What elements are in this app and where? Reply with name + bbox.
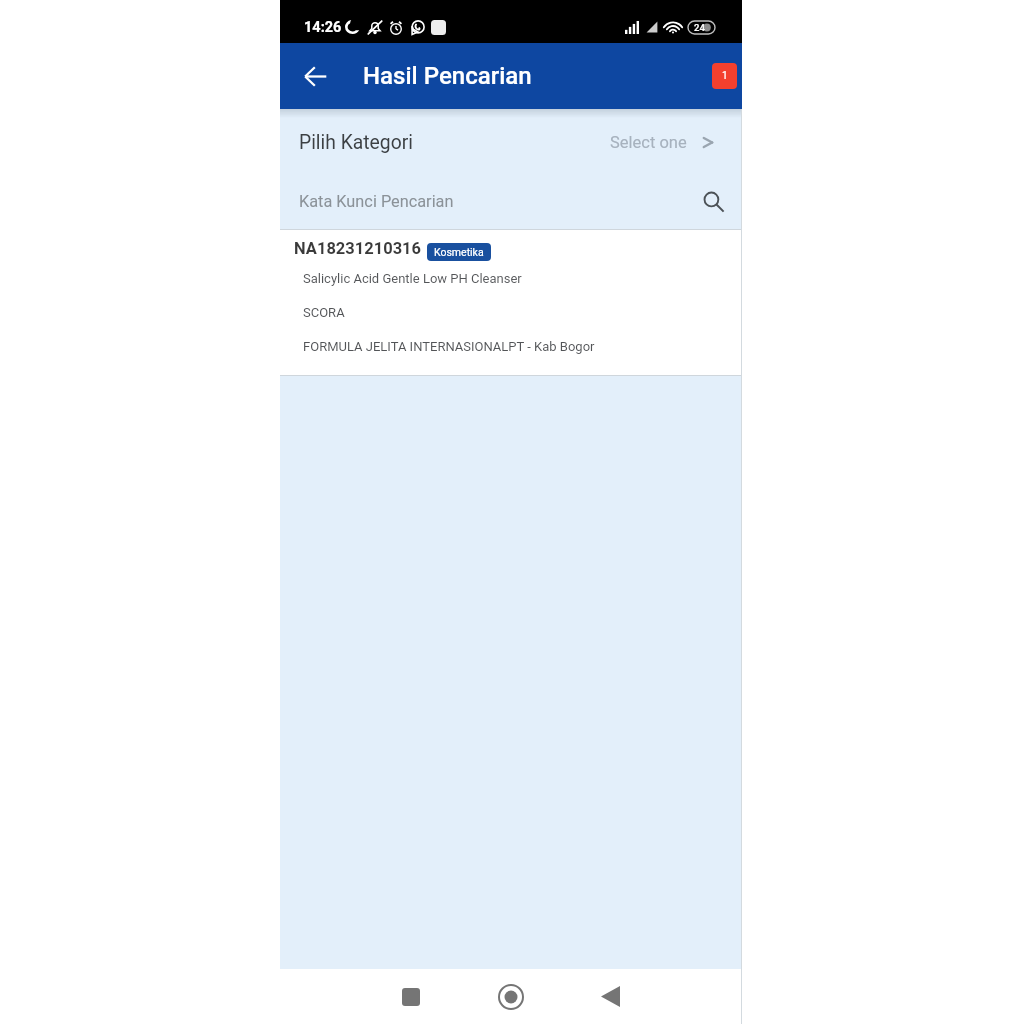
button[interactable]: Recents xyxy=(388,974,433,1019)
button[interactable]: Pilih Kategori xyxy=(280,112,742,173)
staticText: 24 xyxy=(694,22,705,33)
staticText: NA18231210316 xyxy=(294,239,422,258)
button[interactable]: Kata Kunci Pencarian xyxy=(280,173,742,229)
staticText: Select one xyxy=(610,133,687,152)
button[interactable]: NA18231210316 xyxy=(280,230,742,375)
staticText: Kosmetika xyxy=(434,246,484,258)
staticText: SCORA xyxy=(303,305,345,320)
button[interactable]: Back xyxy=(588,974,633,1019)
staticText: FORMULA JELITA INTERNASIONALPT - Kab Bog… xyxy=(303,339,595,354)
button[interactable]: Home xyxy=(488,974,533,1019)
button[interactable]: Back xyxy=(298,59,332,93)
staticText: Pilih Kategori xyxy=(299,131,413,154)
staticText: 14:26 xyxy=(304,19,342,36)
staticText: Hasil Pencarian xyxy=(363,62,532,90)
button[interactable]: Search xyxy=(702,190,725,213)
button[interactable]: Notifications xyxy=(712,63,737,89)
staticText: Kata Kunci Pencarian xyxy=(299,192,454,211)
staticText: 1 xyxy=(722,70,728,82)
staticText: Salicylic Acid Gentle Low PH Cleanser xyxy=(303,271,522,286)
